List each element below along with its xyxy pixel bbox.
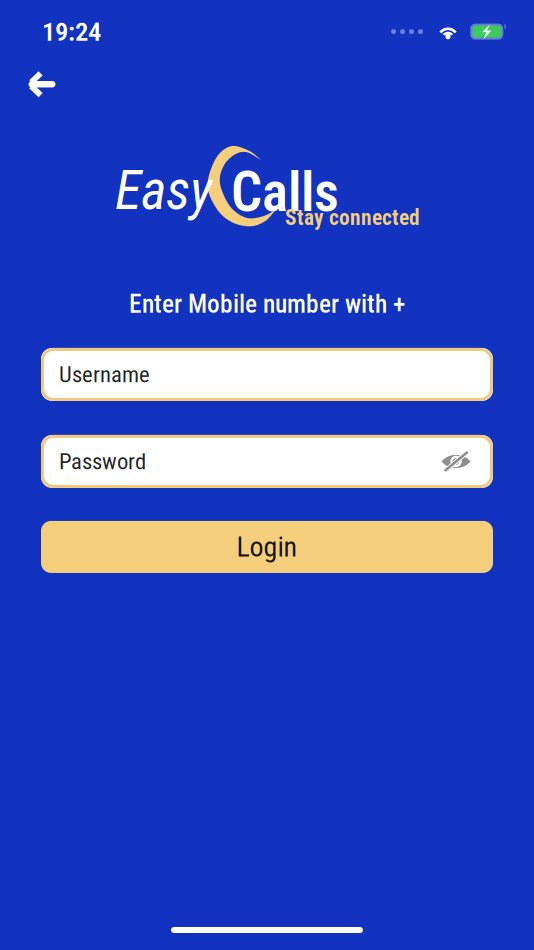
staticText: Login — [236, 530, 297, 563]
staticText: Password — [59, 448, 146, 475]
staticText: Easy — [115, 158, 212, 222]
staticText: 19:24 — [42, 16, 101, 47]
staticText: Stay connected — [285, 205, 420, 230]
button[interactable]: Login — [41, 521, 493, 573]
staticText: Username — [59, 361, 150, 388]
staticText: Enter Mobile number with + — [129, 289, 405, 319]
staticText: Calls — [231, 160, 339, 224]
button[interactable]: Back — [0, 47, 80, 111]
button[interactable]: Show password — [441, 449, 473, 473]
